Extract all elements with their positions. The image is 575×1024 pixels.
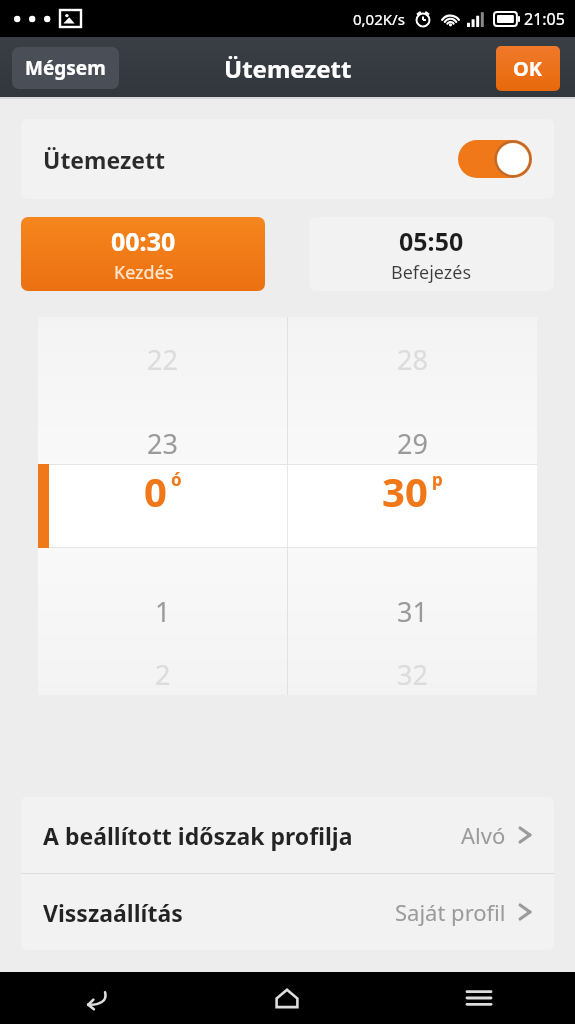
staticText: A beállított időszak profilja <box>43 820 353 851</box>
staticText: OK <box>513 55 543 82</box>
button[interactable]: 1 <box>38 569 287 653</box>
button[interactable]: OK <box>496 46 560 91</box>
staticText: 30 <box>382 464 428 518</box>
button[interactable]: 32 <box>288 653 537 695</box>
staticText: Ütemezett <box>43 144 166 175</box>
staticText: Ütemezett <box>224 52 352 85</box>
staticText: 28 <box>397 341 428 378</box>
button[interactable]: Ütemezett <box>21 119 554 199</box>
button[interactable] <box>38 485 287 569</box>
staticText: 2 <box>155 656 171 693</box>
staticText: 22 <box>147 341 178 378</box>
button[interactable]: A beállított időszak profilja <box>21 797 554 873</box>
button[interactable]: Back <box>0 972 191 1024</box>
staticText: 31 <box>397 593 428 630</box>
staticText: Saját profil <box>395 897 506 927</box>
button[interactable]: 00:30 <box>21 217 265 291</box>
button[interactable]: Visszaállítás <box>21 874 554 950</box>
button[interactable] <box>288 485 537 569</box>
staticText: ó <box>171 468 182 491</box>
staticText: 1 <box>155 593 171 630</box>
button[interactable]: 05:50 <box>309 217 554 291</box>
staticText: 0 <box>144 464 167 518</box>
button[interactable]: 29 <box>288 401 537 485</box>
staticText: Befejezés <box>391 260 472 285</box>
button[interactable]: Mégsem <box>12 47 119 89</box>
button[interactable]: Menu <box>383 972 575 1024</box>
button[interactable]: 31 <box>288 569 537 653</box>
staticText: p <box>432 468 443 491</box>
staticText: 32 <box>397 656 428 693</box>
staticText: 23 <box>147 425 178 462</box>
staticText: 29 <box>397 425 428 462</box>
staticText: 05:50 <box>399 224 464 258</box>
staticText: 00:30 <box>111 224 176 258</box>
staticText: Mégsem <box>25 55 106 81</box>
staticText: 0,02K/s <box>353 9 405 29</box>
button[interactable]: Home <box>191 972 383 1024</box>
staticText: Visszaállítás <box>43 897 183 928</box>
staticText: Kezdés <box>114 260 174 285</box>
staticText: 21:05 <box>524 8 565 30</box>
button[interactable]: Scheduled toggle <box>458 140 532 178</box>
staticText: Alvó <box>461 820 506 850</box>
button[interactable]: 23 <box>38 401 287 485</box>
